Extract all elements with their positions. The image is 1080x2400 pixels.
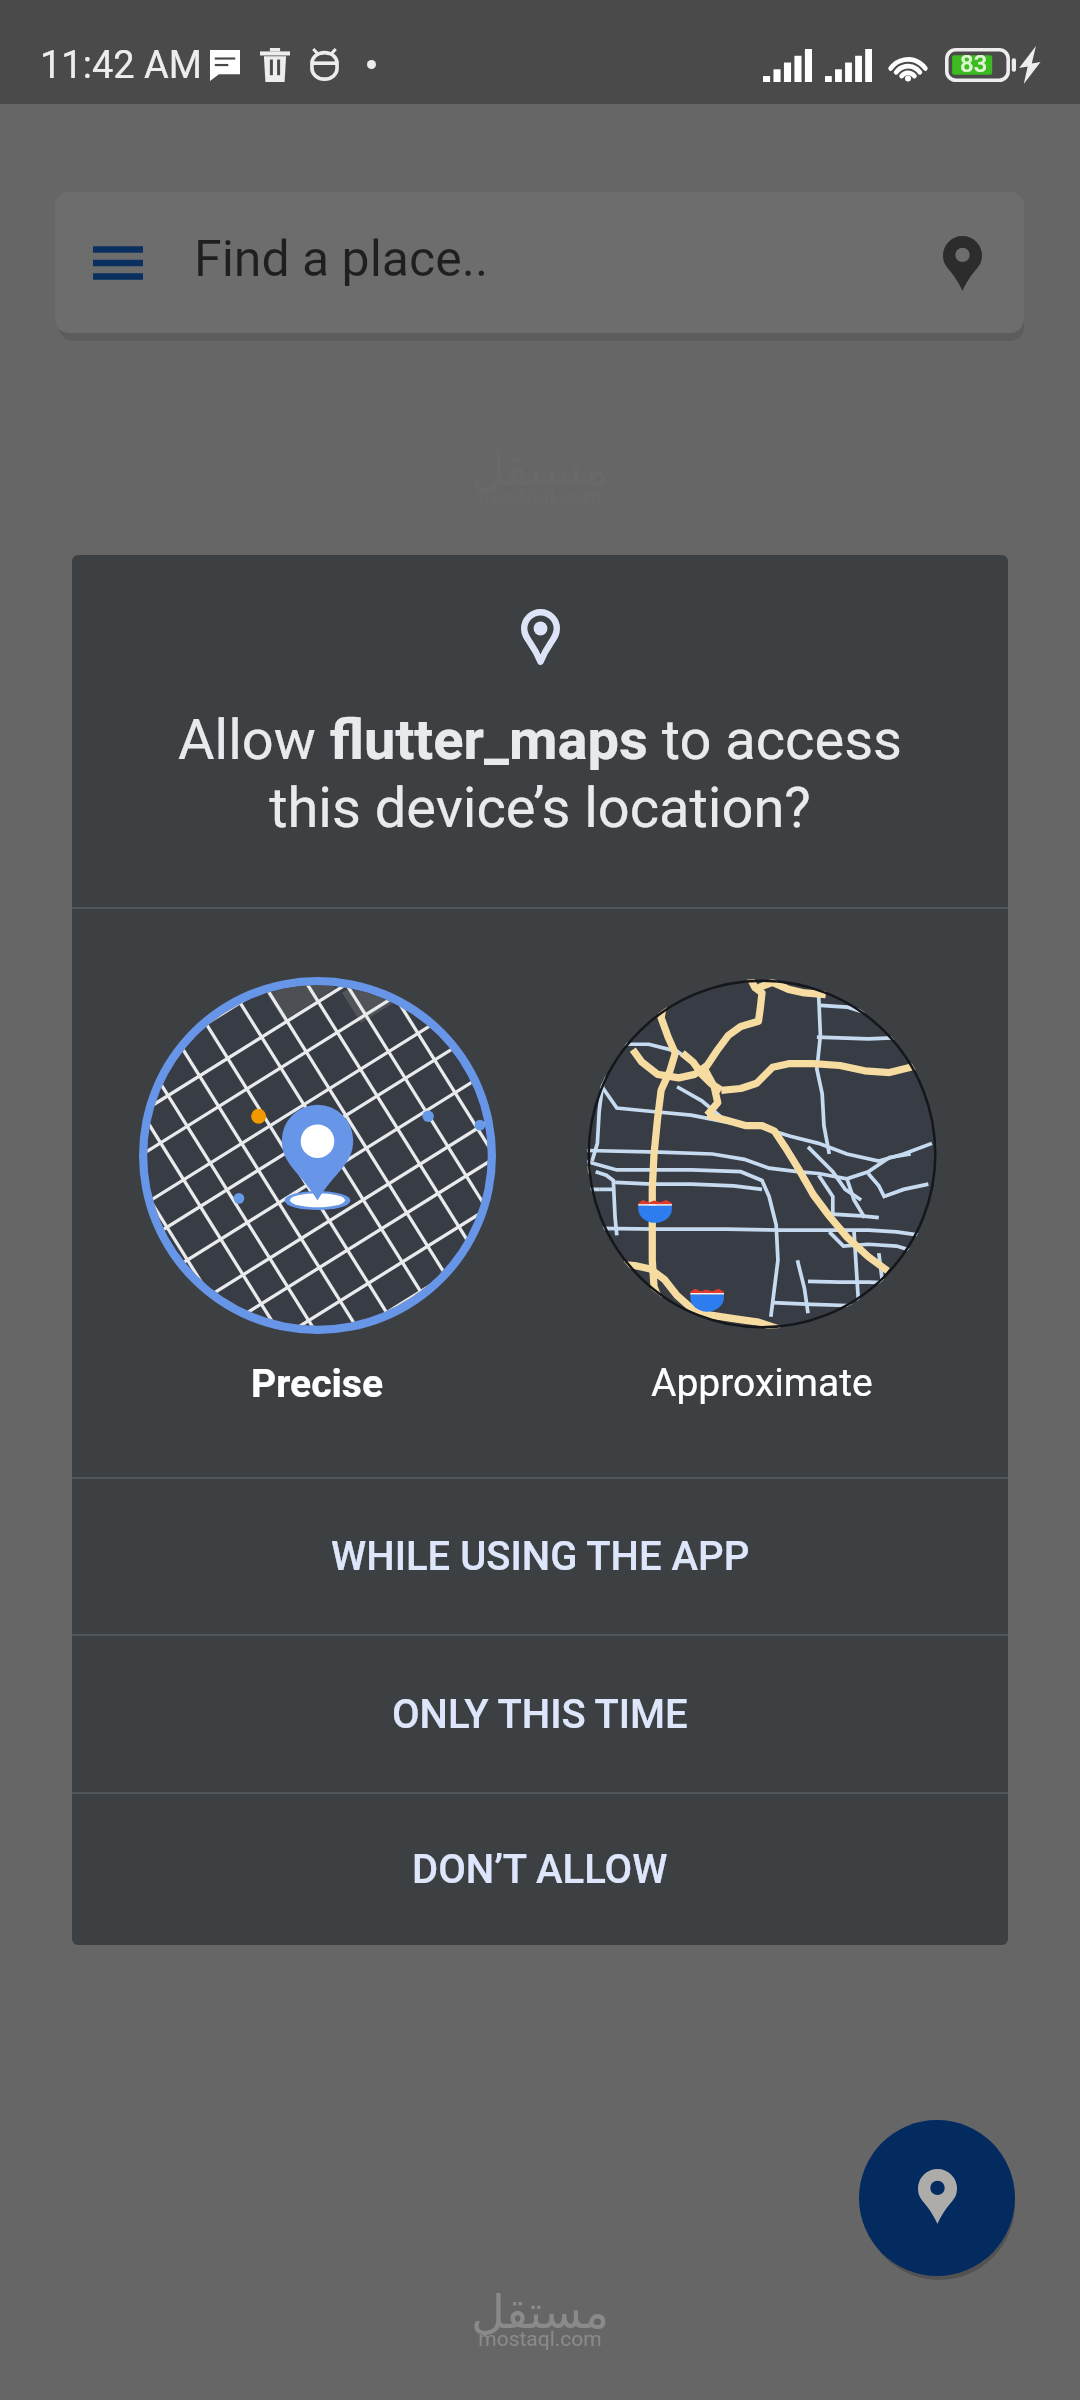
button[interactable]: Menu [55, 192, 1024, 333]
staticText: WHILE USING THE APP [331, 1533, 750, 1580]
staticText: Approximate [651, 1360, 873, 1406]
staticText: Precise [251, 1361, 383, 1407]
staticText: مستقل [340, 2285, 740, 2339]
button[interactable]: Approximate [552, 909, 972, 1406]
button[interactable]: Pick location [919, 220, 1005, 306]
button[interactable]: ONLY THIS TIME [72, 1636, 1008, 1792]
button[interactable]: My location [859, 2120, 1015, 2276]
staticText: DON’T ALLOW [412, 1846, 668, 1893]
staticText: Allow flutter_maps to access this device… [72, 707, 1008, 841]
staticText: 83 [960, 50, 988, 78]
staticText: ONLY THIS TIME [392, 1691, 688, 1738]
button[interactable]: WHILE USING THE APP [72, 1479, 1008, 1634]
staticText: Find a place.. [194, 230, 489, 289]
staticText: mostaql.com [340, 2327, 740, 2352]
button[interactable]: DON’T ALLOW [72, 1794, 1008, 1945]
button[interactable]: Precise [107, 909, 527, 1407]
staticText: 11:42 AM [40, 43, 203, 88]
button[interactable]: Menu [78, 223, 158, 303]
